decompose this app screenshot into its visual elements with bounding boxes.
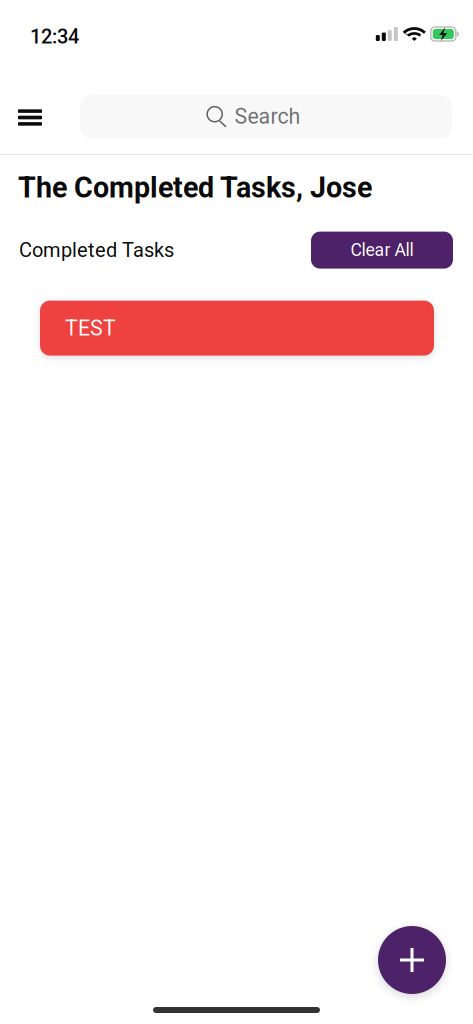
staticText: The Completed Tasks, Jose [18,171,372,205]
button[interactable]: Add task [378,926,446,994]
button[interactable]: Search [80,88,452,155]
staticText: 12:34 [30,25,79,48]
staticText: Completed Tasks [19,238,174,262]
staticText: TEST [65,316,116,341]
button[interactable]: Clear All [311,232,453,269]
button[interactable]: Menu [0,88,80,155]
staticText: Clear All [350,240,413,260]
button[interactable]: TEST [40,301,434,356]
staticText: Search [234,104,300,129]
